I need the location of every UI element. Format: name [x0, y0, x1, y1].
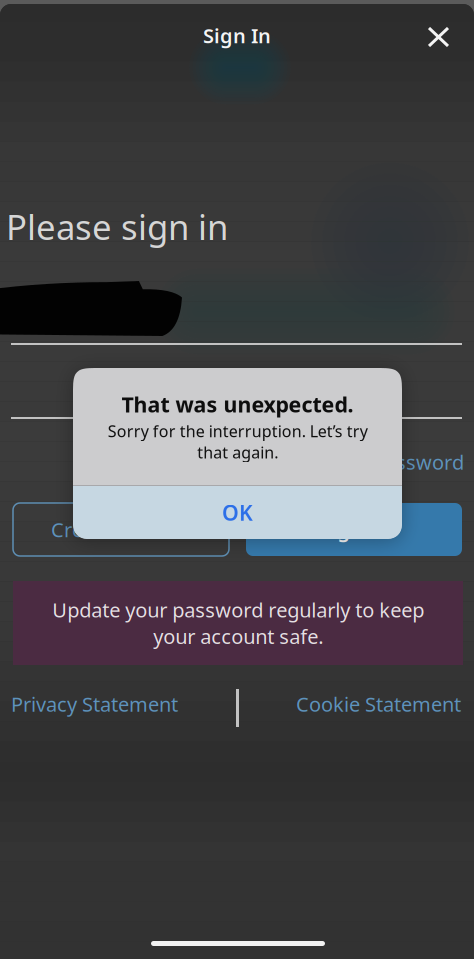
staticText: OK [222, 498, 253, 527]
staticText: Create account [51, 516, 191, 543]
staticText: Forgot password [307, 449, 464, 475]
staticText: Privacy Statement [11, 691, 178, 717]
staticText: Sign in [320, 516, 387, 543]
staticText: Cookie Statement [296, 691, 461, 717]
staticText: Sorry for the interruption. Let’s try th… [107, 420, 367, 463]
button[interactable]: OK [73, 486, 402, 539]
button[interactable]: Forgot password [14, 451, 464, 473]
button[interactable]: Privacy Statement [11, 685, 211, 723]
staticText: Please sign in [6, 203, 228, 249]
button[interactable]: Cookie Statement [261, 685, 461, 723]
button[interactable]: Sign in [246, 503, 462, 556]
staticText: Sign In [203, 22, 271, 49]
staticText: That was unexpected. [121, 390, 353, 418]
staticText: Update your password regularly to keep y… [52, 596, 424, 649]
button[interactable]: Close [417, 16, 460, 58]
button[interactable]: Create account [13, 503, 229, 556]
